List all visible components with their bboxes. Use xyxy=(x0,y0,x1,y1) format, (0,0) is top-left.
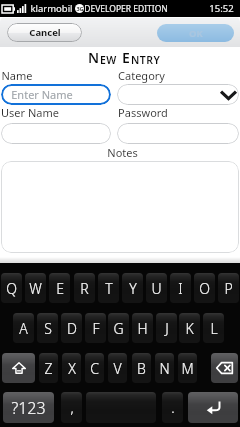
staticText: Y xyxy=(129,279,137,298)
staticText: klarmobil xyxy=(30,2,73,15)
staticText: Z xyxy=(44,359,53,378)
button[interactable] xyxy=(1,161,239,253)
staticText: Category xyxy=(118,68,165,83)
staticText: N xyxy=(159,359,170,378)
staticText: V xyxy=(113,359,122,378)
staticText: Q xyxy=(6,279,17,298)
staticText: ?123 xyxy=(11,397,46,419)
staticText: 3G xyxy=(76,5,84,12)
staticText: , xyxy=(70,398,74,417)
button[interactable]: D xyxy=(61,313,82,343)
button[interactable]: W xyxy=(25,273,46,303)
staticText: F xyxy=(92,319,100,338)
button[interactable]: M xyxy=(178,353,197,383)
button[interactable] xyxy=(1,123,111,144)
button[interactable]: L xyxy=(203,313,224,343)
staticText: W xyxy=(29,279,42,298)
staticText: K xyxy=(185,319,194,338)
staticText: Password xyxy=(118,105,168,120)
staticText: H xyxy=(137,319,148,338)
staticText: U xyxy=(151,279,162,298)
staticText: E xyxy=(122,48,131,67)
button[interactable]: R xyxy=(74,273,95,303)
button[interactable]: Space xyxy=(86,392,156,423)
staticText: A xyxy=(19,319,28,338)
button[interactable]: B xyxy=(132,353,151,383)
button[interactable]: G xyxy=(108,313,129,343)
staticText: N xyxy=(88,48,100,67)
staticText: User Name xyxy=(1,105,59,120)
staticText: L xyxy=(210,319,218,338)
button[interactable]: T xyxy=(98,273,119,303)
staticText: B xyxy=(137,359,146,378)
staticText: R xyxy=(80,279,89,298)
button[interactable]: OK xyxy=(157,24,234,42)
button[interactable]: C xyxy=(85,353,104,383)
button[interactable]: Q xyxy=(1,273,22,303)
staticText: Name xyxy=(1,68,33,83)
button[interactable]: Enter Name xyxy=(1,84,111,105)
staticText: G xyxy=(113,319,124,338)
staticText: Enter Name xyxy=(11,87,73,102)
button[interactable]: A xyxy=(13,313,34,343)
staticText: P xyxy=(224,279,233,298)
staticText: I xyxy=(178,279,183,298)
staticText: J xyxy=(165,319,169,338)
button[interactable] xyxy=(117,84,239,105)
button[interactable]: Shift xyxy=(2,353,35,383)
button[interactable]: U xyxy=(146,273,167,303)
staticText: NTRY xyxy=(131,53,161,67)
button[interactable]: E xyxy=(49,273,70,303)
button[interactable]: O xyxy=(194,273,215,303)
button[interactable]: ?123 xyxy=(3,392,54,423)
staticText: C xyxy=(90,359,99,378)
staticText: T xyxy=(105,279,113,298)
button[interactable] xyxy=(117,123,239,144)
button[interactable]: N xyxy=(155,353,174,383)
button[interactable]: , xyxy=(61,392,82,423)
staticText: D xyxy=(67,319,77,338)
button[interactable]: S xyxy=(37,313,58,343)
button[interactable]: F xyxy=(85,313,106,343)
button[interactable]: Z xyxy=(39,353,58,383)
staticText: 15:52 xyxy=(209,2,234,15)
button[interactable]: H xyxy=(132,313,153,343)
staticText: Notes xyxy=(107,145,138,160)
staticText: O xyxy=(199,279,210,298)
staticText: EW xyxy=(100,53,117,67)
staticText: S xyxy=(44,319,52,338)
staticText: . xyxy=(171,398,175,417)
staticText: Cancel xyxy=(29,26,61,39)
button[interactable]: P xyxy=(218,273,239,303)
button[interactable]: J xyxy=(156,313,177,343)
button[interactable]: Backspace xyxy=(211,353,238,383)
button[interactable]: Y xyxy=(122,273,143,303)
staticText: X xyxy=(68,359,76,378)
button[interactable]: Enter xyxy=(188,392,238,423)
button[interactable]: V xyxy=(108,353,127,383)
staticText: OK xyxy=(189,27,203,40)
button[interactable]: . xyxy=(162,392,183,423)
staticText: E xyxy=(56,279,64,298)
button[interactable]: K xyxy=(179,313,200,343)
button[interactable]: I xyxy=(170,273,191,303)
staticText: M xyxy=(181,359,194,378)
staticText: DEVELOPER EDITION xyxy=(84,3,168,15)
button[interactable]: Cancel xyxy=(7,23,82,42)
button[interactable]: X xyxy=(62,353,81,383)
